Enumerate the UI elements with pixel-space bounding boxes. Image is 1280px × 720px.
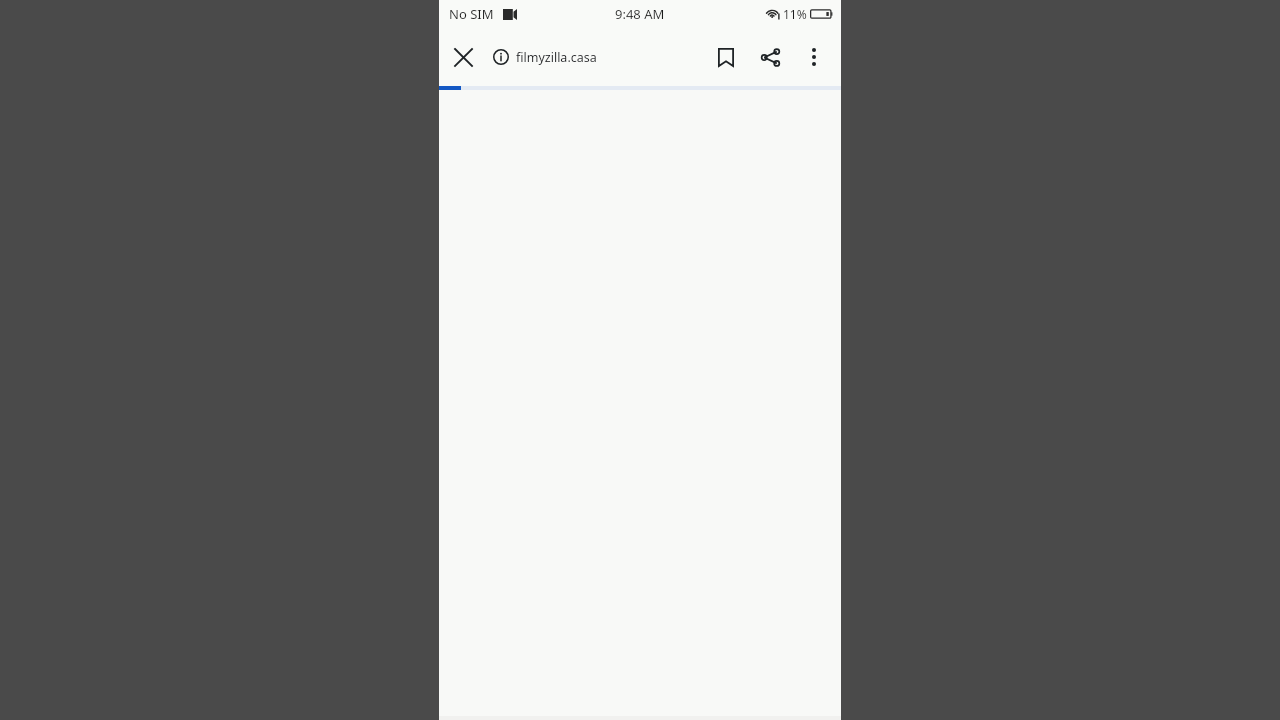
button[interactable]: More options <box>792 35 836 79</box>
staticText: 11% <box>783 6 807 22</box>
staticText: No SIM <box>449 5 494 23</box>
button[interactable]: Share <box>748 35 792 79</box>
button[interactable]: Bookmark <box>704 35 748 79</box>
staticText: filmyzilla.casa <box>516 49 597 66</box>
button[interactable]: filmyzilla.casa <box>493 28 704 86</box>
staticText: 9:48 AM <box>615 5 665 23</box>
button[interactable]: Close <box>439 33 487 81</box>
